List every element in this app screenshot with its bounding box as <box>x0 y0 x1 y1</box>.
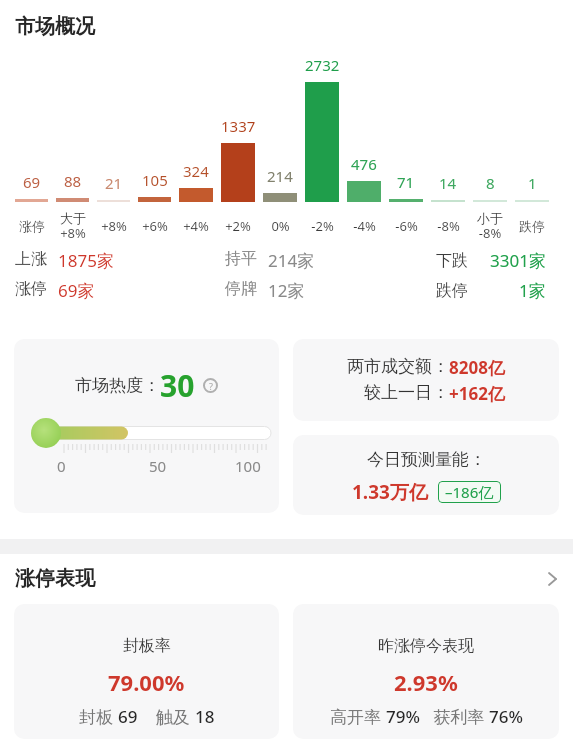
staticText: 8 <box>486 173 495 193</box>
staticText: 105 <box>142 170 168 190</box>
staticText: 较上一日： <box>364 382 449 403</box>
staticText: 69家 <box>58 279 95 302</box>
staticText: +6% <box>142 217 168 235</box>
staticText: 214家 <box>268 249 315 272</box>
staticText: 涨停表现 <box>15 566 95 591</box>
staticText: 3301家 <box>490 249 546 272</box>
staticText: 88 <box>64 171 82 191</box>
staticText: 100 <box>235 456 261 476</box>
button[interactable]: 今日预测量能： <box>293 435 559 515</box>
staticText: 市场热度： <box>75 375 160 396</box>
staticText: –186亿 <box>445 482 494 502</box>
staticText: 下跌 <box>436 251 468 271</box>
staticText: +4% <box>183 217 209 235</box>
staticText: 上涨 <box>15 249 47 269</box>
staticText: 14 <box>439 173 457 193</box>
staticText: 476 <box>351 154 377 174</box>
staticText: 市场概况 <box>15 14 95 39</box>
staticText: 大于 +8% <box>60 210 86 242</box>
staticText: 1.33万亿 <box>352 479 428 505</box>
staticText: +162亿 <box>449 382 505 405</box>
staticText: +8% <box>101 217 127 235</box>
staticText: 涨停 <box>15 279 47 299</box>
staticText: -4% <box>353 217 376 235</box>
staticText: 高开率 <box>330 705 386 728</box>
staticText: 触及 <box>138 705 195 728</box>
staticText: 76% <box>489 705 523 728</box>
staticText: 69 <box>23 172 41 192</box>
staticText: 涨停 <box>19 218 45 234</box>
staticText: -6% <box>395 217 418 235</box>
staticText: 持平 <box>225 249 257 269</box>
staticText: 2.93% <box>394 667 458 697</box>
staticText: 214 <box>267 166 293 186</box>
staticText: 0% <box>271 217 290 235</box>
staticText: 封板率 <box>123 636 171 656</box>
staticText: 79% <box>386 705 420 728</box>
staticText: 获利率 <box>420 705 489 728</box>
staticText: 8208亿 <box>449 356 505 379</box>
staticText: 21 <box>105 173 123 193</box>
staticText: 停牌 <box>225 279 257 299</box>
staticText: 1家 <box>519 279 546 302</box>
staticText: +2% <box>225 217 251 235</box>
staticText: 1337 <box>221 116 256 136</box>
staticText: -2% <box>311 217 334 235</box>
staticText: 12家 <box>268 279 305 302</box>
staticText: 2732 <box>305 55 340 75</box>
staticText: 1875家 <box>58 249 114 272</box>
button[interactable]: 封板率 <box>14 604 279 739</box>
staticText: 昨涨停今表现 <box>378 636 474 656</box>
staticText: 两市成交额： <box>347 356 449 377</box>
staticText: 18 <box>195 705 215 728</box>
staticText: 今日预测量能： <box>367 449 486 470</box>
staticText: 69 <box>118 705 138 728</box>
staticText: 324 <box>183 161 209 181</box>
staticText: 71 <box>397 172 415 192</box>
staticText: 跌停 <box>436 281 468 301</box>
button[interactable]: 涨停表现 <box>15 566 558 591</box>
button[interactable]: 两市成交额： <box>293 339 559 421</box>
staticText: 50 <box>149 456 167 476</box>
staticText: 0 <box>57 456 66 476</box>
staticText: -8% <box>437 217 460 235</box>
staticText: 30 <box>160 365 195 406</box>
staticText: 79.00% <box>108 667 185 697</box>
staticText: 跌停 <box>519 218 545 234</box>
staticText: 封板 <box>79 705 118 728</box>
button[interactable]: 昨涨停今表现 <box>293 604 559 739</box>
staticText: ? <box>209 380 213 392</box>
staticText: 1 <box>528 173 537 193</box>
button[interactable]: 市场热度： <box>14 339 279 513</box>
staticText: 小于 -8% <box>477 210 503 242</box>
